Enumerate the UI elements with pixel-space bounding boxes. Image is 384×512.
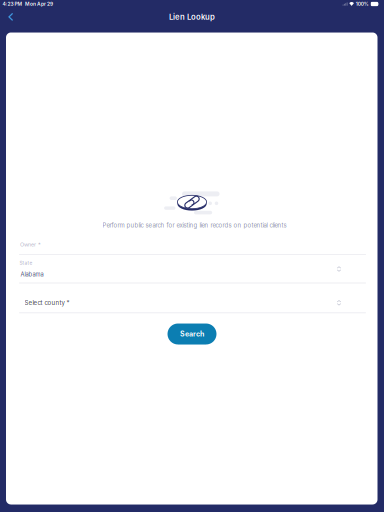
staticText: Mon Apr 29 [25, 1, 53, 7]
staticText: 100% [356, 1, 369, 7]
staticText: Alabama [20, 271, 43, 278]
staticText: Select county * [24, 299, 69, 306]
staticText: Search [180, 330, 204, 338]
staticText: Owner * [20, 241, 41, 248]
staticText: State [19, 260, 32, 266]
button[interactable]: Search [167, 323, 216, 344]
staticText: 4:23 PM [2, 1, 22, 7]
button[interactable]: Owner * [19, 236, 366, 258]
staticText: Lien Lookup [169, 12, 215, 22]
button[interactable]: State [19, 257, 366, 285]
button[interactable]: Back [2, 9, 20, 25]
staticText: Perform public search for existing lien … [102, 222, 286, 229]
button[interactable]: Select county * [19, 294, 366, 316]
